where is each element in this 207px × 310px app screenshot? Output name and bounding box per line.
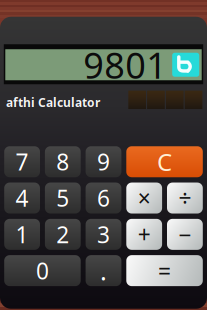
staticText: = [158,256,171,286]
button[interactable]: 5 [45,182,81,213]
staticText: . [100,254,107,287]
button[interactable]: − [167,219,203,250]
button[interactable]: Advertisement [128,91,146,109]
staticText: × [138,183,151,213]
staticText: 8 [56,147,69,177]
staticText: afthi Calculator [6,94,100,110]
staticText: 0 [36,256,49,286]
staticText: + [138,219,151,249]
button[interactable]: 3 [86,219,121,250]
button[interactable]: C [126,146,203,177]
staticText: 7 [16,147,29,177]
staticText: C [157,146,172,178]
staticText: 1 [16,219,29,249]
button[interactable]: Advertisement [147,91,165,109]
button[interactable]: 7 [4,146,40,177]
button[interactable]: Advertisement [166,91,184,109]
staticText: − [178,219,191,249]
button[interactable]: = [126,255,203,286]
button[interactable]: + [126,219,162,250]
button[interactable]: Twitter [172,53,199,77]
staticText: ÷ [178,183,191,213]
button[interactable]: 4 [4,182,40,213]
staticText: 9801 [83,41,167,89]
button[interactable]: 0 [4,255,81,286]
button[interactable]: 2 [45,219,81,250]
button[interactable]: Advertisement [185,91,202,109]
staticText: 9 [97,147,110,177]
button[interactable]: 9 [86,146,121,177]
button[interactable]: ÷ [167,182,203,213]
staticText: 6 [97,183,110,213]
button[interactable]: . [86,255,121,286]
button[interactable]: 1 [4,219,40,250]
staticText: 3 [97,219,110,249]
button[interactable]: 8 [45,146,81,177]
button[interactable]: × [126,182,162,213]
button[interactable]: 6 [86,182,121,213]
staticText: 2 [56,219,69,249]
staticText: 4 [16,183,29,213]
staticText: 5 [56,183,69,213]
